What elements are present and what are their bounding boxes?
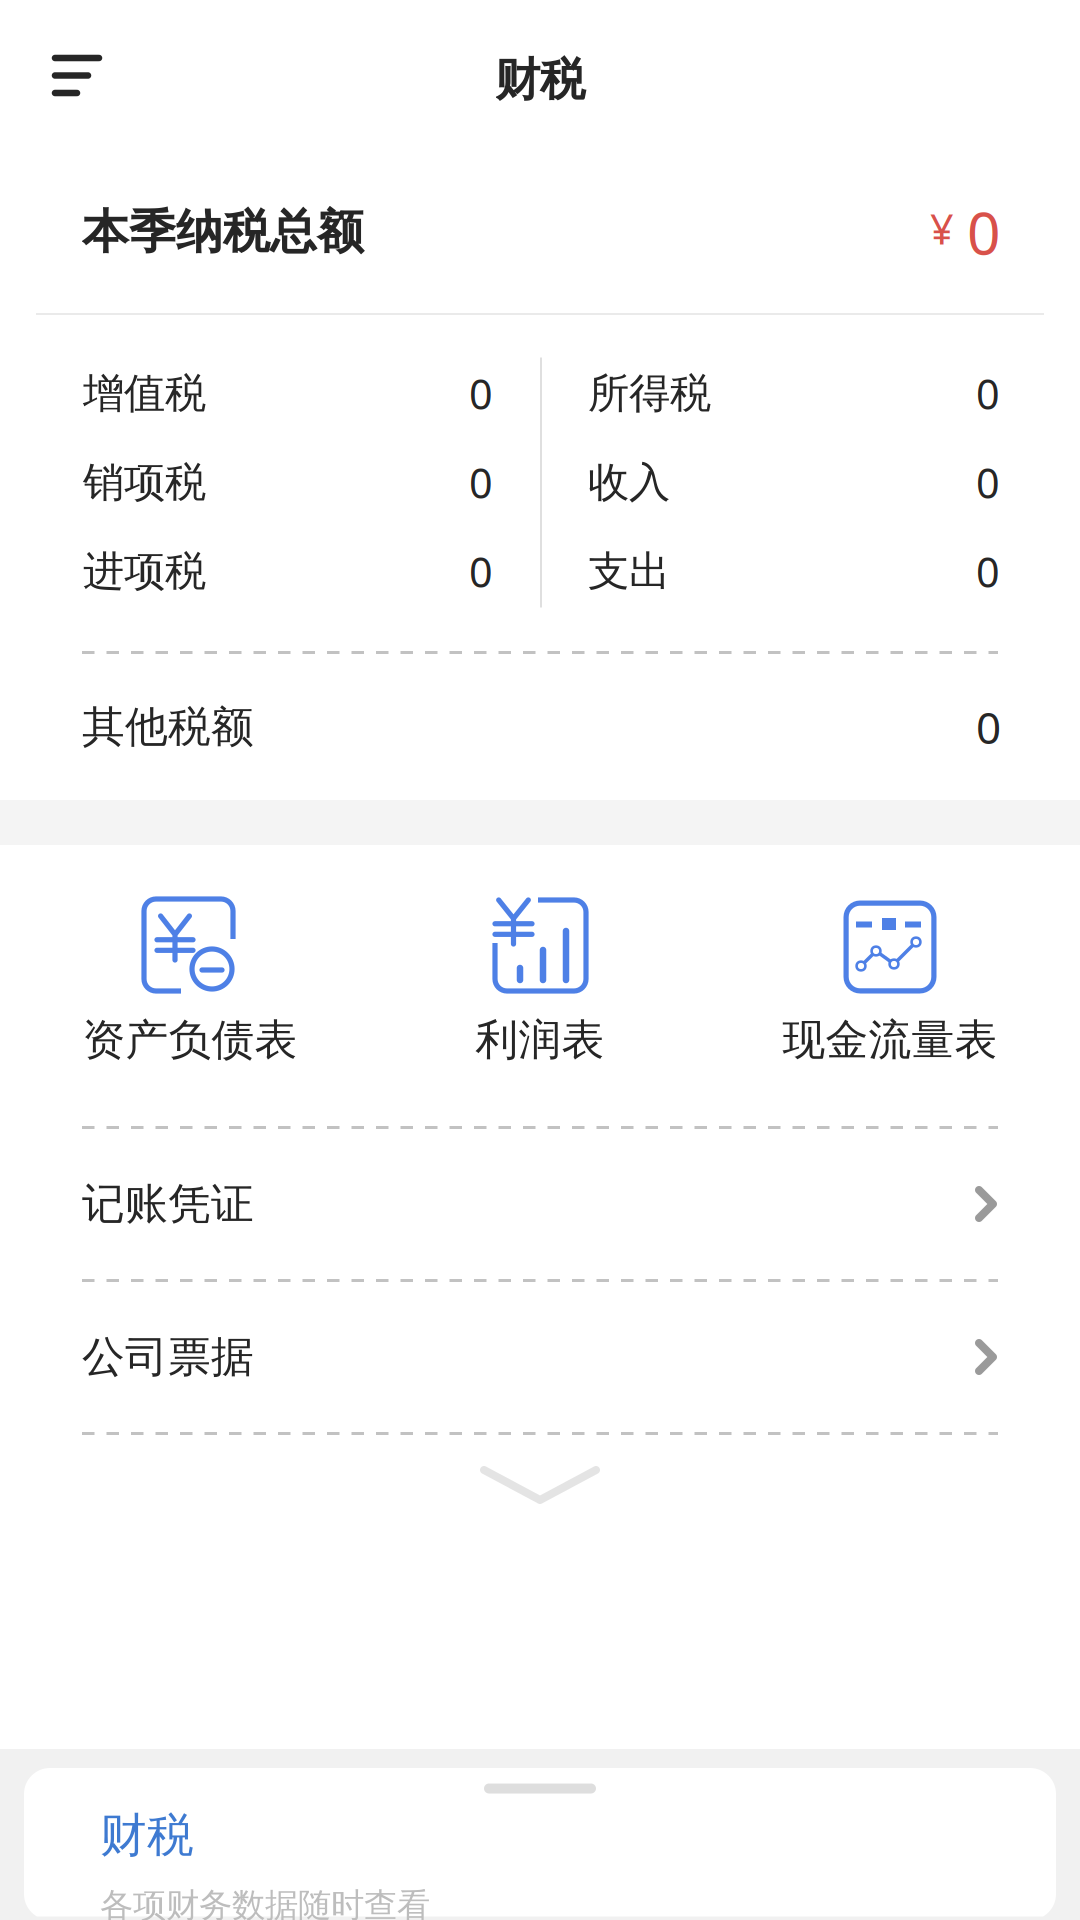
staticText: 0 bbox=[976, 366, 1000, 421]
staticText: 0 bbox=[469, 455, 493, 510]
staticText: 支出 bbox=[588, 546, 670, 597]
button[interactable]: 资产负债表 bbox=[15, 899, 365, 1085]
staticText: 记账凭证 bbox=[82, 1178, 254, 1230]
staticText: 财税 bbox=[495, 52, 585, 108]
button[interactable]: 记账凭证 bbox=[0, 1129, 1080, 1279]
staticText: 资产负债表 bbox=[82, 1014, 297, 1066]
staticText: 现金流量表 bbox=[782, 1014, 997, 1066]
staticText: 各项财务数据随时查看 bbox=[100, 1885, 430, 1920]
staticText: 收入 bbox=[588, 457, 670, 508]
staticText: 本季纳税总额 bbox=[82, 203, 364, 261]
staticText: 0 bbox=[976, 544, 1000, 599]
staticText: 0 bbox=[967, 193, 1001, 271]
staticText: 0 bbox=[976, 698, 1001, 756]
staticText: 所得税 bbox=[588, 368, 711, 419]
button[interactable]: 现金流量表 bbox=[715, 899, 1065, 1085]
staticText: 增值税 bbox=[83, 368, 206, 419]
button[interactable]: Menu bbox=[25, 55, 134, 96]
staticText: 0 bbox=[469, 544, 493, 599]
button[interactable]: 利润表 bbox=[365, 899, 715, 1085]
staticText: 进项税 bbox=[83, 546, 206, 597]
staticText: 0 bbox=[469, 366, 493, 421]
staticText: 0 bbox=[976, 455, 1000, 510]
staticText: 销项税 bbox=[83, 457, 206, 508]
button[interactable]: Expand bbox=[480, 1435, 600, 1525]
staticText: 公司票据 bbox=[82, 1331, 254, 1383]
button[interactable]: 公司票据 bbox=[0, 1282, 1080, 1432]
staticText: 其他税额 bbox=[82, 701, 254, 753]
staticText: 利润表 bbox=[475, 1014, 604, 1066]
staticText: 财税 bbox=[100, 1807, 194, 1864]
staticText: ¥ bbox=[930, 201, 954, 256]
